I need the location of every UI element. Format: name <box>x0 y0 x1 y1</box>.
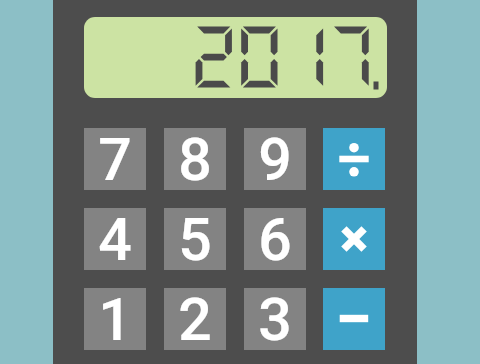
staticText: 6 <box>258 205 292 267</box>
staticText: 1 <box>98 285 132 347</box>
button[interactable]: 2 <box>164 288 226 350</box>
button[interactable]: 7 <box>84 128 146 190</box>
button[interactable]: Subtract <box>323 288 385 350</box>
button[interactable]: 3 <box>244 288 306 350</box>
staticText: 3 <box>258 285 292 347</box>
button[interactable]: 5 <box>164 208 226 270</box>
button[interactable]: 6 <box>244 208 306 270</box>
button[interactable]: Divide <box>323 128 385 190</box>
button[interactable]: 1 <box>84 288 146 350</box>
button[interactable]: 9 <box>244 128 306 190</box>
staticText: 7 <box>98 125 132 187</box>
staticText: 5 <box>178 205 212 267</box>
button[interactable]: 4 <box>84 208 146 270</box>
button[interactable]: 8 <box>164 128 226 190</box>
staticText: 2 <box>178 285 212 347</box>
button[interactable]: Multiply <box>323 208 385 270</box>
staticText: 9 <box>258 125 292 187</box>
staticText: 8 <box>178 125 212 187</box>
staticText: 4 <box>98 205 132 267</box>
